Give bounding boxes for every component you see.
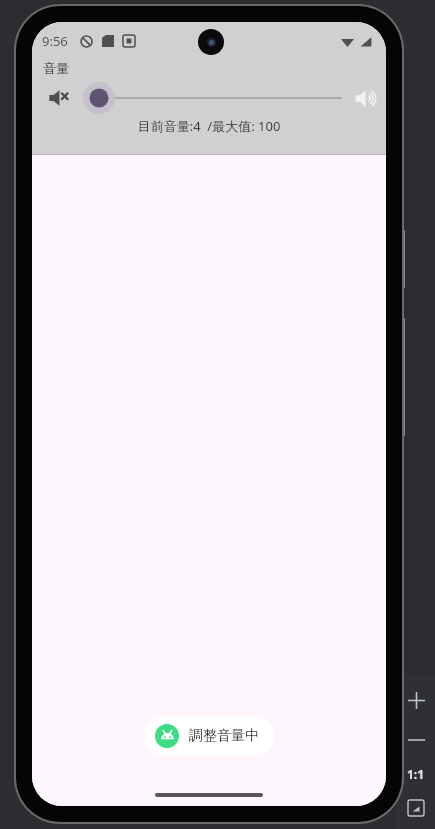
button[interactable]: Maximum volume <box>350 82 382 114</box>
button[interactable]: Fit to window <box>402 794 430 822</box>
staticText: 1:1 <box>407 766 425 782</box>
staticText: 9:56 <box>42 32 68 50</box>
button[interactable]: Zoom out <box>402 726 430 754</box>
button[interactable]: Mute <box>44 83 74 113</box>
button[interactable]: 1:1 <box>402 760 430 788</box>
staticText: 調整音量中 <box>189 727 259 745</box>
button[interactable]: 調整音量中 <box>144 716 274 756</box>
staticText: 音量 <box>43 60 69 76</box>
button[interactable]: Zoom in <box>400 684 432 716</box>
staticText: 目前音量:4 /最大值: 100 <box>32 117 386 135</box>
button[interactable] <box>83 81 342 115</box>
